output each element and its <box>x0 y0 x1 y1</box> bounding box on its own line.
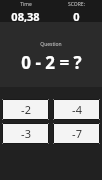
staticText: 0 - 2 = ? <box>21 51 82 74</box>
staticText: -3 <box>21 126 31 141</box>
button[interactable]: -2 <box>2 99 49 120</box>
staticText: 08,38 <box>11 9 40 22</box>
button[interactable]: -3 <box>2 123 49 144</box>
button[interactable]: -7 <box>53 123 100 144</box>
staticText: Question <box>40 41 62 48</box>
button[interactable]: -4 <box>53 99 100 120</box>
staticText: -4 <box>72 102 82 117</box>
staticText: -2 <box>21 102 31 117</box>
staticText: SCORE: <box>68 1 85 8</box>
staticText: Time <box>20 1 32 8</box>
staticText: -7 <box>72 126 82 141</box>
staticText: 0 <box>73 9 80 22</box>
